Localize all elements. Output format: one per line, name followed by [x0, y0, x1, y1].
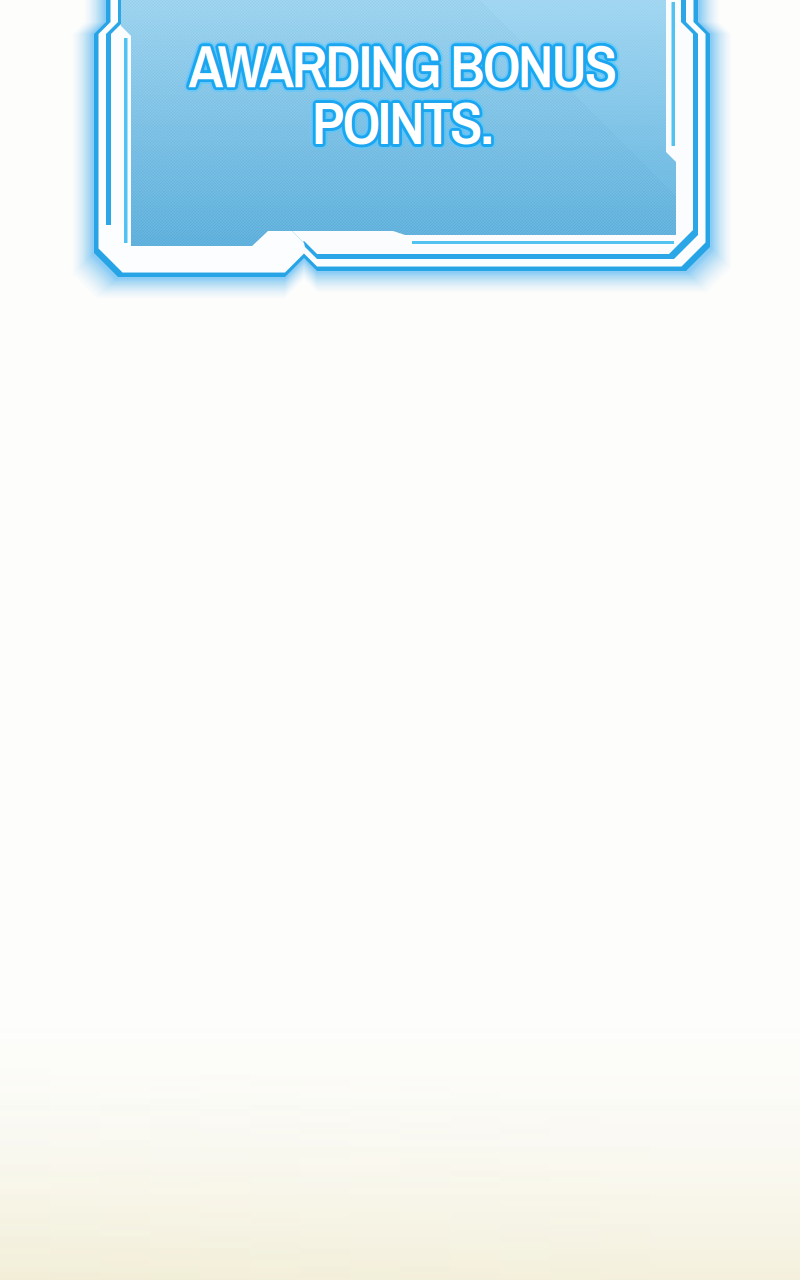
staticText: POINTS.: [309, 84, 492, 164]
staticText: AWARDING BONUS: [189, 22, 618, 103]
staticText: POINTS.: [308, 78, 491, 159]
staticText: POINTS.: [314, 77, 496, 158]
staticText: AWARDING BONUS: [183, 25, 613, 106]
staticText: POINTS.: [312, 82, 494, 163]
staticText: AWARDING BONUS: [184, 27, 613, 108]
staticText: POINTS.: [316, 80, 499, 161]
staticText: POINTS.: [308, 85, 491, 166]
staticText: AWARDING BONUS: [193, 23, 622, 104]
staticText: AWARDING BONUS: [184, 23, 613, 104]
staticText: AWARDING BONUS: [188, 28, 617, 109]
staticText: AWARDING BONUS: [187, 23, 616, 104]
staticText: POINTS.: [314, 82, 497, 163]
staticText: AWARDING BONUS: [193, 27, 622, 108]
staticText: POINTS.: [314, 87, 496, 167]
staticText: AWARDING BONUS: [188, 20, 618, 101]
staticText: POINTS.: [314, 80, 496, 161]
staticText: POINTS.: [310, 77, 492, 158]
staticText: AWARDING BONUS: [186, 25, 615, 105]
staticText: POINTS.: [310, 80, 493, 160]
staticText: POINTS.: [311, 85, 494, 165]
staticText: AWARDING BONUS: [191, 25, 620, 105]
staticText: AWARDING BONUS: [186, 24, 615, 104]
staticText: POINTS.: [314, 81, 497, 162]
staticText: AWARDING BONUS: [193, 25, 623, 106]
staticText: POINTS.: [310, 84, 493, 165]
staticText: POINTS.: [309, 83, 491, 163]
staticText: POINTS.: [314, 83, 496, 164]
staticText: POINTS.: [309, 80, 492, 161]
staticText: POINTS.: [307, 80, 490, 161]
staticText: POINTS.: [311, 79, 494, 160]
staticText: POINTS.: [312, 87, 494, 168]
staticText: AWARDING BONUS: [186, 30, 616, 111]
staticText: AWARDING BONUS: [192, 29, 621, 109]
staticText: POINTS.: [310, 87, 492, 167]
staticText: AWARDING BONUS: [191, 26, 620, 106]
staticText: AWARDING BONUS: [192, 22, 621, 102]
staticText: POINTS.: [312, 85, 495, 165]
staticText: POINTS.: [317, 82, 499, 163]
staticText: POINTS.: [312, 79, 495, 160]
staticText: AWARDING BONUS: [185, 29, 614, 109]
staticText: POINTS.: [316, 84, 499, 165]
staticText: AWARDING BONUS: [190, 30, 619, 111]
staticText: AWARDING BONUS: [186, 26, 615, 106]
staticText: POINTS.: [315, 78, 498, 159]
staticText: AWARDING BONUS: [190, 21, 619, 101]
staticText: POINTS.: [307, 84, 490, 165]
staticText: AWARDING BONUS: [191, 24, 620, 104]
staticText: AWARDING BONUS: [187, 27, 616, 108]
staticText: POINTS.: [313, 84, 496, 165]
staticText: POINTS.: [315, 85, 498, 166]
staticText: AWARDING BONUS: [188, 22, 617, 103]
staticText: POINTS.: [307, 82, 489, 163]
staticText: POINTS.: [309, 81, 491, 162]
staticText: AWARDING BONUS: [189, 28, 618, 109]
staticText: AWARDING BONUS: [186, 21, 616, 101]
staticText: AWARDING BONUS: [191, 27, 620, 107]
staticText: AWARDING BONUS: [188, 25, 618, 106]
staticText: AWARDING BONUS: [190, 27, 619, 108]
staticText: AWARDING BONUS: [188, 30, 618, 111]
staticText: AWARDING BONUS: [190, 23, 619, 104]
staticText: POINTS.: [312, 77, 494, 158]
staticText: AWARDING BONUS: [185, 22, 614, 102]
staticText: POINTS.: [313, 80, 496, 160]
staticText: AWARDING BONUS: [186, 27, 615, 108]
